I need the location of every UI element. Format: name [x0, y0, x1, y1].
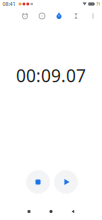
button[interactable]: Home [40, 202, 62, 220]
staticText: 71 [96, 1, 100, 7]
button[interactable]: Start [55, 171, 76, 192]
button[interactable]: More options [84, 9, 101, 22]
button[interactable]: Recent apps [18, 202, 40, 220]
staticText: 00:09.07 [16, 64, 86, 87]
button[interactable]: Back [62, 202, 84, 220]
button[interactable]: Alarm [16, 9, 33, 22]
staticText: 08:41 [2, 0, 15, 8]
button[interactable]: Stopwatch [50, 9, 67, 22]
button[interactable]: Clock [33, 9, 50, 22]
button[interactable]: Timer [67, 9, 84, 22]
button[interactable]: Stop [27, 171, 48, 192]
